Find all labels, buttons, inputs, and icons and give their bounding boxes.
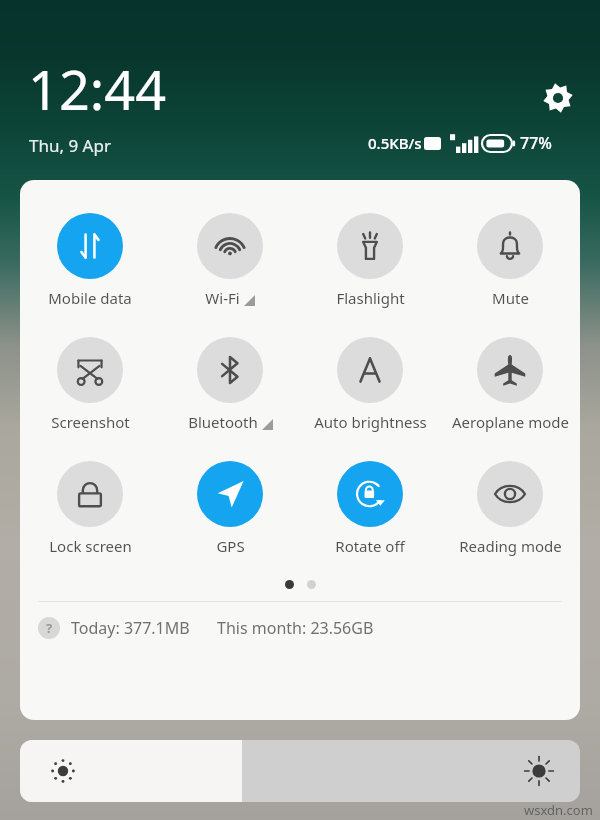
staticText: 12:44 — [28, 52, 167, 126]
staticText: Wi-Fi — [205, 288, 240, 308]
button[interactable]: Bluetooth — [160, 337, 300, 432]
staticText: Flashlight — [336, 288, 405, 308]
button[interactable]: Mute — [440, 213, 580, 308]
staticText: This month: 23.56GB — [217, 617, 374, 639]
button[interactable]: ? — [20, 602, 580, 654]
staticText: Mobile data — [48, 288, 132, 308]
staticText: Reading mode — [459, 536, 562, 556]
staticText: Screenshot — [51, 412, 130, 432]
staticText: Mute — [492, 288, 529, 308]
staticText: Today: 377.1MB — [71, 617, 190, 639]
staticText: 77% — [520, 132, 552, 154]
button[interactable]: Wi-Fi — [160, 213, 300, 308]
staticText: Lock screen — [49, 536, 132, 556]
button[interactable]: Reading mode — [440, 461, 580, 556]
button[interactable]: Rotate off — [300, 461, 440, 556]
staticText: 0.5KB/s — [368, 133, 422, 153]
button[interactable]: Auto brightness — [300, 337, 440, 432]
staticText: Bluetooth — [188, 412, 258, 432]
button[interactable]: Screenshot — [20, 337, 160, 432]
button[interactable]: Brightness — [20, 740, 580, 802]
button[interactable]: Lock screen — [20, 461, 160, 556]
staticText: wsxdn.com — [524, 801, 593, 819]
staticText: Aeroplane mode — [452, 412, 569, 432]
button[interactable]: GPS — [160, 461, 300, 556]
staticText: GPS — [216, 536, 245, 556]
button[interactable]: Mobile data — [20, 213, 160, 308]
staticText: Thu, 9 Apr — [29, 134, 111, 157]
staticText: Auto brightness — [314, 412, 427, 432]
button[interactable]: Settings — [536, 76, 580, 120]
staticText: ? — [46, 619, 53, 637]
staticText: Rotate off — [335, 536, 405, 556]
button[interactable]: Flashlight — [300, 213, 440, 308]
button[interactable]: Aeroplane mode — [440, 337, 580, 432]
